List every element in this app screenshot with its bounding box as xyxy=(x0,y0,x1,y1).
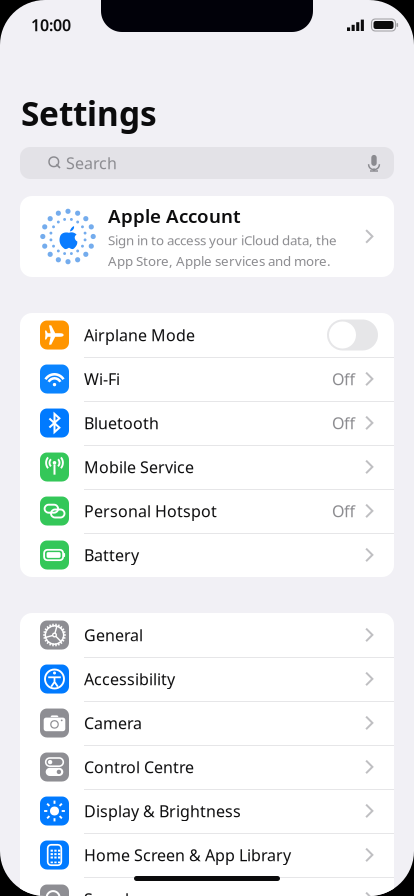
staticText: Off xyxy=(332,368,355,390)
button[interactable]: Battery xyxy=(20,533,394,577)
button[interactable]: Personal Hotspot xyxy=(20,489,394,533)
staticText: Camera xyxy=(84,712,142,734)
staticText: App Store, Apple services and more. xyxy=(108,252,331,270)
button[interactable]: Mobile Service xyxy=(20,445,394,489)
staticText: Off xyxy=(332,412,355,434)
staticText: General xyxy=(84,624,143,646)
staticText: Search xyxy=(66,152,117,174)
button[interactable]: Search xyxy=(20,147,394,179)
staticText: Bluetooth xyxy=(84,412,159,434)
button[interactable]: Wi-Fi xyxy=(20,357,394,401)
staticText: Display & Brightness xyxy=(84,800,241,822)
button[interactable]: Control Centre xyxy=(20,745,394,789)
staticText: Sign in to access your iCloud data, the xyxy=(108,231,337,249)
staticText: 10:00 xyxy=(31,14,71,36)
staticText: Settings xyxy=(21,91,157,135)
staticText: Battery xyxy=(84,544,139,566)
staticText: Airplane Mode xyxy=(84,324,195,346)
staticText: Control Centre xyxy=(84,756,194,778)
button[interactable]: Accessibility xyxy=(20,657,394,701)
button[interactable]: Camera xyxy=(20,701,394,745)
staticText: Mobile Service xyxy=(84,456,194,478)
button[interactable]: Bluetooth xyxy=(20,401,394,445)
staticText: Off xyxy=(332,500,355,522)
button[interactable]: General xyxy=(20,613,394,657)
button[interactable]: Apple Account xyxy=(20,196,394,277)
staticText: Apple Account xyxy=(108,203,241,228)
staticText: Search xyxy=(84,888,135,896)
staticText: Home Screen & App Library xyxy=(84,844,291,866)
button[interactable]: Home Screen & App Library xyxy=(20,833,394,877)
staticText: Personal Hotspot xyxy=(84,500,217,522)
button[interactable]: Airplane Mode xyxy=(20,313,394,357)
staticText: Accessibility xyxy=(84,668,175,690)
staticText: Wi-Fi xyxy=(84,368,120,390)
button[interactable]: Search xyxy=(20,877,394,896)
button[interactable]: Display & Brightness xyxy=(20,789,394,833)
